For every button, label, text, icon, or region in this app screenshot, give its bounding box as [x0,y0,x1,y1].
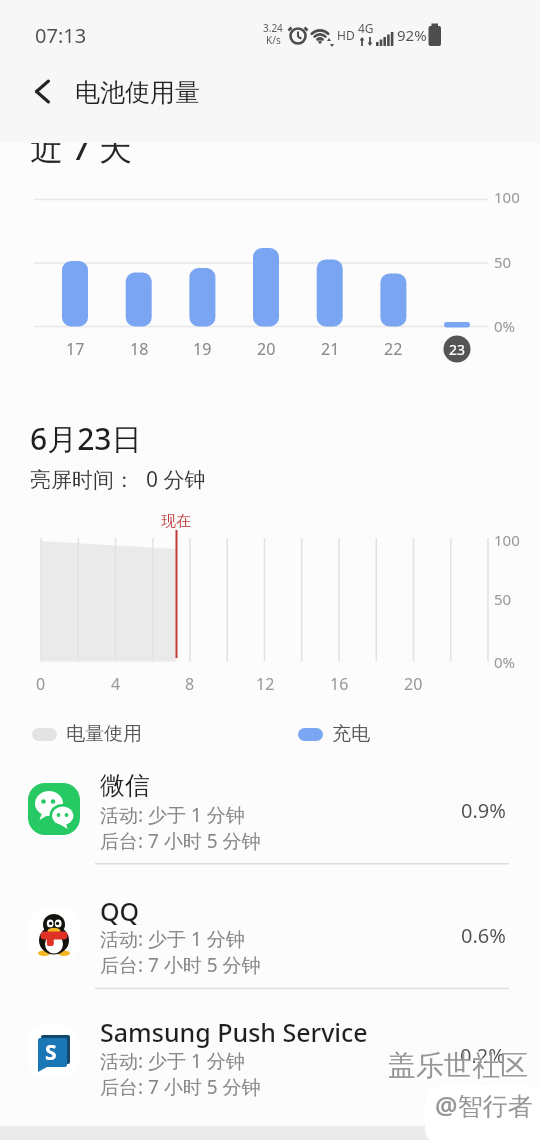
staticText: 92% [397,25,427,45]
staticText: 现在 [161,512,191,531]
staticText: HD [337,27,355,43]
staticText: 近 7 天 [30,125,133,170]
staticText: 微信 [100,770,150,801]
button[interactable]: 微信 [0,768,540,863]
staticText: K/s [266,33,281,47]
staticText: 0% [494,652,516,672]
staticText: 18 [130,338,149,360]
staticText: 电量使用 [66,722,142,746]
staticText: @智行者 [435,1088,533,1122]
staticText: 19 [193,338,212,360]
staticText: 0.9% [461,797,506,824]
staticText: 后台: 7 小时 5 分钟 [100,1074,261,1100]
staticText: 后台: 7 小时 5 分钟 [100,952,261,978]
button[interactable]: S [0,1018,540,1113]
staticText: 活动: 少于 1 分钟 [100,926,245,952]
staticText: 盖乐世社区 [390,1050,530,1085]
button[interactable] [24,76,58,110]
staticText: 22 [384,338,403,360]
staticText: 100 [494,187,520,207]
staticText: 活动: 少于 1 分钟 [100,1048,245,1074]
staticText: 07:13 [35,22,87,49]
button[interactable]: QQ [0,893,540,988]
staticText: @智行者 [437,1090,535,1124]
staticText: 亮屏时间： 0 分钟 [30,465,206,494]
staticText: 0% [494,316,516,336]
staticText: 17 [66,338,85,360]
staticText: 0.2% [460,1042,505,1069]
staticText: 充电 [332,722,370,746]
staticText: Samsung Push Service [100,1015,368,1049]
staticText: 后台: 7 小时 5 分钟 [100,828,261,854]
staticText: 12 [256,673,275,695]
staticText: 23 [449,340,466,359]
staticText: S [45,1038,57,1067]
staticText: 16 [330,673,349,695]
staticText: 20 [257,338,276,360]
staticText: 6月23日 [30,418,142,459]
staticText: 50 [494,252,512,272]
staticText: 电池使用量 [75,77,200,108]
staticText: 8 [185,673,195,695]
staticText: 21 [321,338,340,360]
staticText: 20 [404,673,423,695]
staticText: 活动: 少于 1 分钟 [100,802,245,828]
staticText: 50 [494,589,512,609]
staticText: 4 [111,673,121,695]
staticText: 0.6% [461,922,506,949]
staticText: 盖乐世社区 [388,1048,528,1083]
staticText: 100 [494,530,520,550]
staticText: QQ [100,894,140,928]
staticText: 0 [36,673,46,695]
staticText: 3.24 [263,21,283,35]
staticText: 4G [358,20,374,36]
